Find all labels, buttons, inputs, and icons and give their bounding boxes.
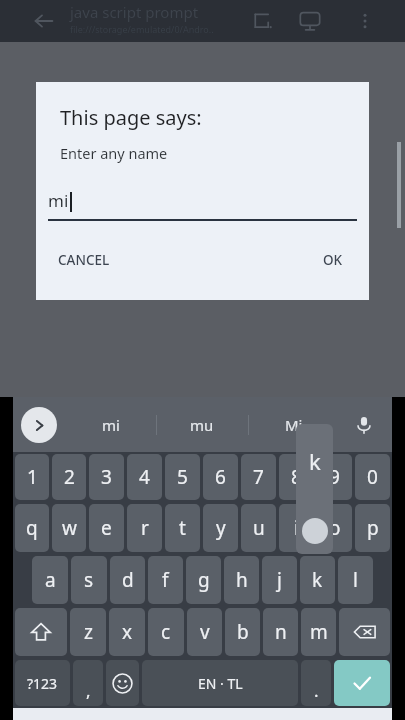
staticText: This page says:: [60, 104, 202, 131]
staticText: 4: [139, 464, 150, 490]
button[interactable]: q: [15, 504, 49, 552]
staticText: a: [45, 567, 56, 593]
button[interactable]: d: [110, 556, 145, 604]
button[interactable]: OK: [313, 245, 353, 275]
button[interactable]: ,: [73, 660, 103, 706]
staticText: j: [277, 567, 282, 593]
staticText: 2: [64, 464, 75, 490]
button[interactable]: s: [71, 556, 107, 604]
button[interactable]: k: [300, 556, 335, 604]
staticText: q: [26, 515, 38, 541]
staticText: c: [161, 619, 171, 645]
staticText: Mi: [285, 415, 303, 435]
button[interactable]: Backspace: [339, 608, 390, 656]
button[interactable]: 3: [89, 454, 124, 500]
button[interactable]: Desktop site: [290, 1, 330, 41]
button[interactable]: Expand suggestions: [21, 407, 57, 443]
staticText: k: [309, 446, 321, 476]
button[interactable]: i: [279, 504, 314, 552]
staticText: k: [312, 567, 323, 593]
staticText: 0: [367, 464, 378, 490]
button[interactable]: y: [203, 504, 238, 552]
staticText: o: [329, 515, 341, 541]
staticText: w: [62, 515, 77, 541]
staticText: l: [353, 567, 358, 593]
button[interactable]: l: [338, 556, 373, 604]
staticText: f: [162, 567, 169, 593]
button[interactable]: Back: [24, 1, 64, 41]
staticText: java script prompt: [70, 2, 199, 22]
button[interactable]: New tab: [242, 1, 282, 41]
button[interactable]: Voice input: [346, 407, 382, 443]
button[interactable]: o: [317, 504, 352, 552]
staticText: mi: [102, 415, 120, 435]
staticText: 7: [253, 464, 264, 490]
button[interactable]: u: [241, 504, 276, 552]
button[interactable]: j: [262, 556, 297, 604]
button[interactable]: r: [127, 504, 162, 552]
button[interactable]: 2: [52, 454, 86, 500]
staticText: Enter any name: [60, 143, 168, 163]
staticText: u: [253, 515, 265, 541]
button[interactable]: w: [52, 504, 86, 552]
staticText: v: [200, 619, 210, 645]
staticText: n: [275, 619, 287, 645]
staticText: t: [179, 515, 186, 541]
staticText: 9: [329, 464, 340, 490]
button[interactable]: c: [148, 608, 184, 656]
staticText: file:///storage/emulated/0/Andro..: [70, 23, 214, 35]
button[interactable]: .: [301, 660, 331, 706]
staticText: 6: [215, 464, 226, 490]
button[interactable]: n: [263, 608, 298, 656]
button[interactable]: Enter: [334, 660, 390, 706]
button[interactable]: z: [70, 608, 106, 656]
button[interactable]: mu: [156, 397, 248, 452]
button[interactable]: 5: [165, 454, 200, 500]
staticText: 8: [291, 464, 302, 490]
staticText: CANCEL: [58, 251, 110, 269]
button[interactable]: b: [225, 608, 260, 656]
button[interactable]: h: [224, 556, 259, 604]
staticText: mu: [190, 415, 214, 435]
button[interactable]: e: [89, 504, 124, 552]
staticText: h: [236, 567, 248, 593]
button[interactable]: EN · TL: [142, 660, 298, 706]
staticText: b: [237, 619, 249, 645]
button[interactable]: f: [148, 556, 183, 604]
staticText: ?123: [27, 674, 58, 693]
button[interactable]: mi: [65, 397, 156, 452]
staticText: y: [216, 515, 226, 541]
staticText: p: [367, 515, 379, 541]
button[interactable]: p: [355, 504, 390, 552]
staticText: r: [141, 515, 149, 541]
button[interactable]: v: [187, 608, 222, 656]
button[interactable]: a: [32, 556, 68, 604]
button[interactable]: Shift: [15, 608, 67, 656]
staticText: .: [314, 679, 319, 702]
staticText: z: [84, 619, 93, 645]
button[interactable]: More options: [345, 1, 385, 41]
button[interactable]: 0: [355, 454, 390, 500]
staticText: 1: [27, 464, 38, 490]
staticText: 3: [101, 464, 112, 490]
button[interactable]: CANCEL: [48, 245, 120, 275]
staticText: g: [198, 567, 210, 593]
staticText: d: [122, 567, 134, 593]
button[interactable]: g: [186, 556, 221, 604]
button[interactable]: 9: [317, 454, 352, 500]
button[interactable]: m: [301, 608, 336, 656]
button[interactable]: 4: [127, 454, 162, 500]
button[interactable]: 7: [241, 454, 276, 500]
button[interactable]: 8: [279, 454, 314, 500]
staticText: e: [101, 515, 112, 541]
button[interactable]: ?123: [15, 660, 70, 706]
button[interactable]: t: [165, 504, 200, 552]
button[interactable]: x: [109, 608, 145, 656]
staticText: mi: [48, 189, 69, 212]
button[interactable]: 6: [203, 454, 238, 500]
staticText: i: [294, 515, 299, 541]
staticText: m: [310, 619, 328, 645]
button[interactable]: 1: [15, 454, 49, 500]
button[interactable]: Mi: [248, 397, 340, 452]
button[interactable]: Emoji: [106, 660, 139, 706]
